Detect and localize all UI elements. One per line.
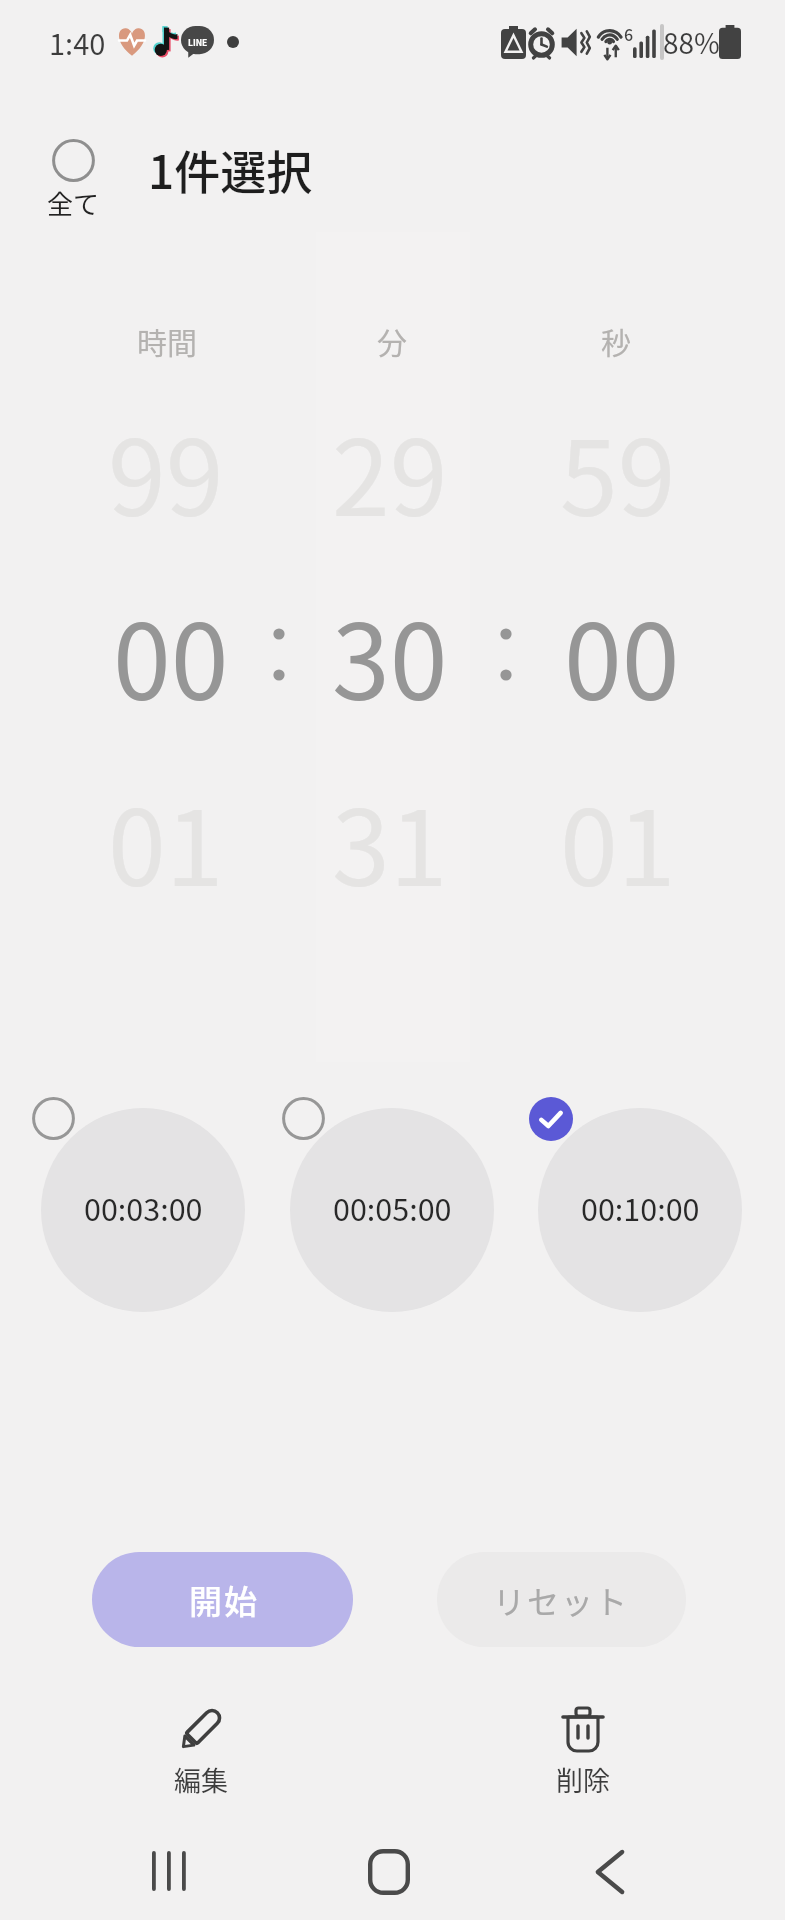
staticText: 全て: [47, 184, 100, 222]
staticText: 1件選択: [148, 136, 313, 198]
staticText: 29: [332, 395, 448, 546]
staticText: 30: [332, 579, 448, 730]
staticText: 開始: [188, 1576, 258, 1624]
staticText: 1:40: [49, 21, 106, 63]
staticText: 分: [377, 319, 407, 362]
staticText: 6: [624, 22, 634, 45]
staticText: 削除: [556, 1760, 610, 1799]
staticText: 00:05:00: [333, 1186, 452, 1230]
staticText: 59: [560, 395, 676, 546]
staticText: 31: [332, 765, 448, 916]
staticText: 編集: [174, 1760, 228, 1799]
staticText: LINE: [188, 36, 208, 48]
staticText: 秒: [601, 319, 631, 362]
staticText: 00: [564, 579, 680, 730]
staticText: 時間: [137, 319, 197, 362]
staticText: 99: [108, 395, 224, 546]
staticText: 00: [113, 579, 229, 730]
staticText: 01: [560, 765, 676, 916]
staticText: 00:10:00: [581, 1186, 700, 1230]
staticText: 00:03:00: [84, 1186, 203, 1230]
staticText: リセット: [493, 1577, 630, 1623]
staticText: 01: [108, 765, 224, 916]
staticText: 88%: [663, 22, 720, 63]
